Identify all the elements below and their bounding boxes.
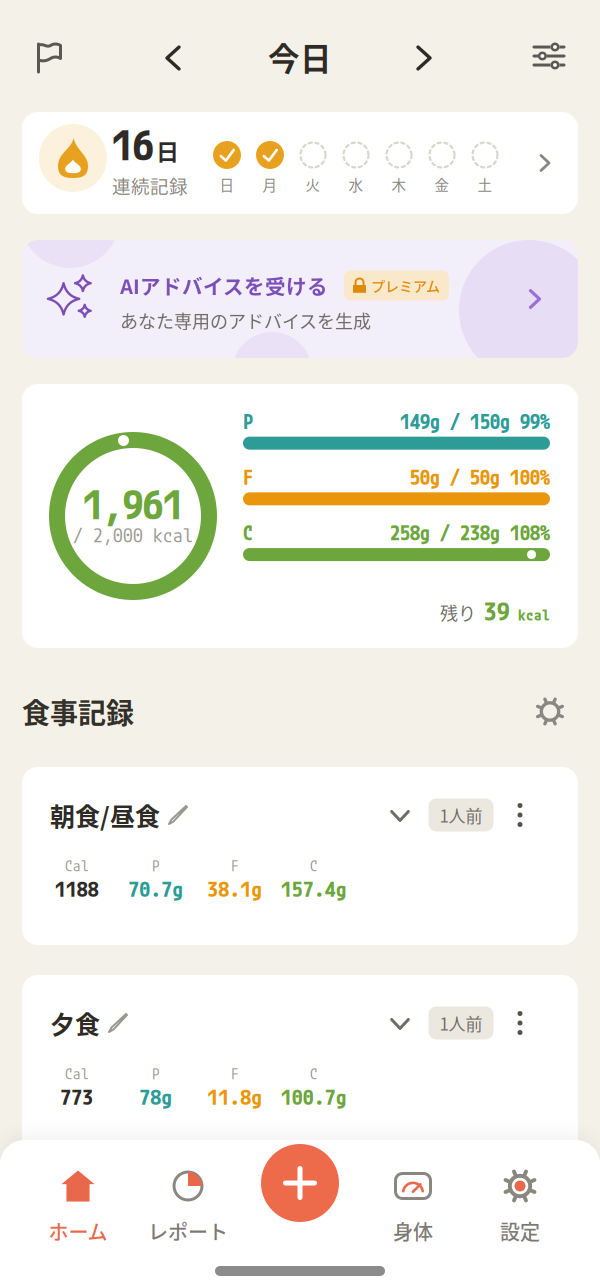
button[interactable]: 記録を追加: [261, 1144, 339, 1222]
button[interactable]: 1人前: [428, 798, 493, 831]
staticText: 連続記録: [112, 172, 188, 199]
button[interactable]: AIアドバイスを受ける プレミアム: [22, 240, 578, 358]
staticText: 食事記録: [22, 691, 134, 732]
button[interactable]: 食事設定: [535, 697, 564, 726]
staticText: F: [231, 856, 239, 875]
staticText: 50g / 50g 100%: [410, 465, 550, 489]
button[interactable]: 折りたたむ: [391, 810, 409, 821]
staticText: 日: [156, 134, 179, 167]
staticText: 258g / 238g 108%: [390, 520, 550, 545]
staticText: 78g: [139, 1084, 172, 1110]
staticText: レポート: [148, 1216, 228, 1245]
button[interactable]: ホーム: [28, 1162, 128, 1254]
staticText: 日: [219, 174, 234, 195]
staticText: 100.7g: [281, 1084, 347, 1110]
staticText: 39: [484, 596, 510, 626]
staticText: 身体: [393, 1216, 433, 1245]
staticText: 木: [391, 174, 406, 195]
staticText: F: [243, 465, 253, 489]
staticText: / 2,000 kcal: [73, 523, 193, 547]
staticText: Cal: [65, 1064, 89, 1083]
button[interactable]: レポート: [138, 1162, 238, 1254]
staticText: 16: [112, 119, 154, 170]
staticText: 火: [305, 174, 320, 195]
staticText: 金: [434, 174, 449, 195]
staticText: 38.1g: [207, 876, 262, 902]
staticText: P: [243, 409, 253, 434]
button[interactable]: 翌日: [417, 46, 431, 70]
staticText: 設定: [500, 1216, 540, 1245]
staticText: 今日: [268, 34, 332, 80]
button[interactable]: 名前を編集: [108, 1013, 128, 1033]
button[interactable]: 目標: [36, 42, 63, 72]
staticText: AIアドバイスを受ける: [120, 271, 328, 300]
button[interactable]: 名前を編集: [168, 805, 188, 825]
staticText: あなた専用のアドバイスを生成: [120, 307, 371, 334]
staticText: C: [310, 856, 318, 875]
staticText: 149g / 150g 99%: [400, 409, 550, 434]
staticText: 11.8g: [207, 1084, 262, 1110]
staticText: kcal: [518, 606, 550, 624]
staticText: 1人前: [439, 803, 482, 827]
staticText: 70.7g: [128, 876, 183, 902]
button[interactable]: 1人前: [428, 1006, 493, 1039]
staticText: C: [310, 1064, 318, 1083]
button[interactable]: 前日: [166, 46, 180, 70]
button[interactable]: 設定: [470, 1162, 570, 1254]
staticText: C: [243, 520, 253, 545]
staticText: 1人前: [439, 1011, 482, 1035]
staticText: P: [152, 1064, 160, 1083]
staticText: F: [231, 1064, 239, 1083]
button[interactable]: 連続記録 16日: [22, 112, 578, 214]
staticText: プレミアム: [371, 275, 440, 296]
staticText: P: [152, 856, 160, 875]
staticText: 773: [60, 1084, 93, 1110]
button[interactable]: 表示設定: [534, 45, 564, 67]
staticText: 月: [262, 174, 277, 195]
staticText: 157.4g: [281, 876, 347, 902]
staticText: 水: [348, 174, 363, 195]
staticText: 残り: [440, 600, 476, 626]
staticText: 夕食: [50, 1005, 100, 1041]
staticText: 1188: [55, 876, 99, 902]
staticText: 1,961: [83, 479, 183, 529]
staticText: ホーム: [48, 1216, 107, 1245]
staticText: Cal: [65, 856, 89, 875]
button[interactable]: 身体: [363, 1162, 463, 1254]
button[interactable]: メニュー: [509, 802, 531, 828]
button[interactable]: メニュー: [509, 1010, 531, 1036]
staticText: 土: [477, 174, 492, 195]
staticText: 朝食/昼食: [50, 797, 160, 833]
button[interactable]: 折りたたむ: [391, 1018, 409, 1029]
